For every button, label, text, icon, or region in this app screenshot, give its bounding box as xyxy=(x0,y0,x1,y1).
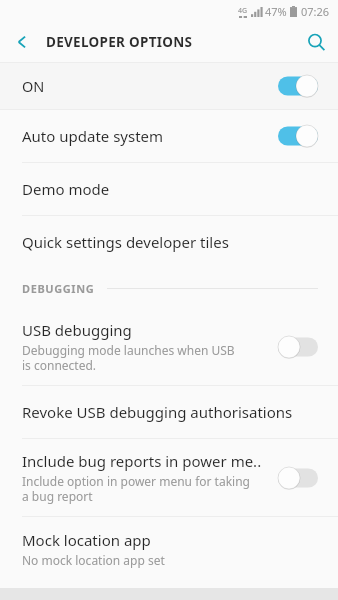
button[interactable]: Mock location app xyxy=(0,517,338,581)
staticText: USB debugging xyxy=(22,320,132,340)
staticText: Debugging mode launches when USB is conn… xyxy=(22,342,235,373)
button[interactable]: ON xyxy=(0,63,338,109)
button[interactable]: Off xyxy=(276,465,320,491)
staticText: Auto update system xyxy=(22,126,164,146)
button[interactable]: Auto update system xyxy=(0,110,338,162)
button[interactable]: On xyxy=(276,73,320,99)
staticText: DEVELOPER OPTIONS xyxy=(46,33,193,51)
staticText: Include option in power menu for taking … xyxy=(22,473,250,504)
button[interactable]: Revoke USB debugging authorisations xyxy=(0,386,338,438)
button[interactable]: Off xyxy=(276,334,320,360)
button[interactable]: Include bug reports in power me.. xyxy=(0,439,338,516)
staticText: Mock location app xyxy=(22,530,151,550)
button[interactable]: Demo mode xyxy=(0,163,338,215)
staticText: 07:26 xyxy=(301,4,330,19)
staticText: ON xyxy=(22,76,45,96)
button[interactable]: Navigate up xyxy=(0,22,44,62)
staticText: 47% xyxy=(265,4,287,19)
staticText: Include bug reports in power me.. xyxy=(22,451,262,471)
staticText: 4G xyxy=(238,6,248,16)
button[interactable]: Search xyxy=(294,22,338,62)
staticText: Revoke USB debugging authorisations xyxy=(22,402,293,422)
button[interactable]: USB debugging xyxy=(0,308,338,385)
staticText: Demo mode xyxy=(22,179,110,199)
staticText: DEBUGGING xyxy=(22,281,95,296)
staticText: Quick settings developer tiles xyxy=(22,232,229,252)
button[interactable]: Quick settings developer tiles xyxy=(0,216,338,268)
staticText: No mock location app set xyxy=(22,552,165,568)
button[interactable]: On xyxy=(276,123,320,149)
